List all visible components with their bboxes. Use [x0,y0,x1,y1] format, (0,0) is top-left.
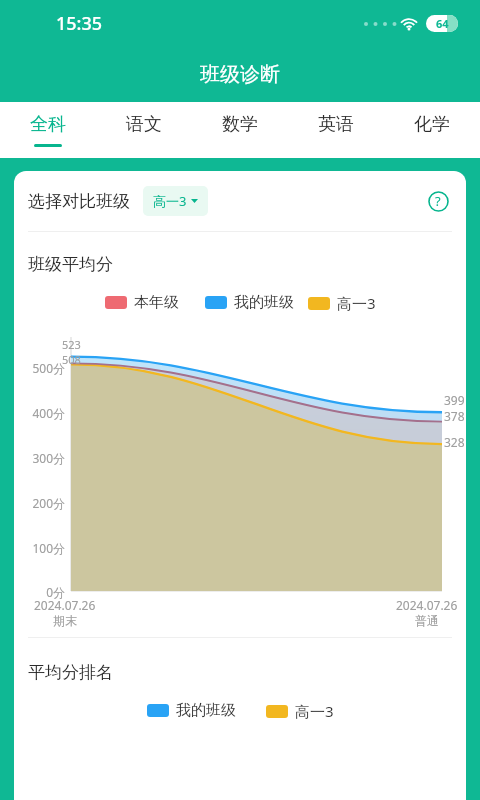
staticText: 100分 [14,540,65,556]
button[interactable]: 高一3 [308,293,376,313]
staticText: 378 [444,408,465,424]
staticText: 普通 [415,613,439,628]
staticText: 500分 [14,360,65,376]
staticText: 400分 [14,405,65,421]
staticText: 523 [62,337,81,352]
button[interactable]: 语文 [96,102,192,158]
staticText: 200分 [14,495,65,511]
button[interactable]: 高一3 [143,186,208,216]
staticText: 平均分排名 [28,662,113,683]
staticText: 300分 [14,450,65,466]
button[interactable]: 数学 [192,102,288,158]
staticText: 64 [436,16,449,31]
button[interactable]: 本年级 [105,293,179,312]
staticText: 高一3 [337,293,376,313]
staticText: 英语 [318,113,354,136]
staticText: 本年级 [134,293,179,312]
staticText: 0分 [14,584,65,600]
staticText: 选择对比班级 [28,191,130,212]
button[interactable]: 我的班级 [147,701,236,720]
staticText: 328 [444,434,465,450]
staticText: 2024.07.26 [396,597,458,613]
button[interactable]: 化学 [384,102,480,158]
staticText: 15:35 [56,11,103,36]
staticText: ? [435,192,441,210]
button[interactable]: 英语 [288,102,384,158]
button[interactable]: 高一3 [266,701,334,721]
button[interactable]: Help [424,187,452,215]
staticText: 语文 [126,113,162,136]
staticText: 数学 [222,113,258,136]
staticText: 班级平均分 [28,254,113,275]
button[interactable]: 我的班级 [205,293,294,312]
staticText: 我的班级 [176,701,236,720]
staticText: 化学 [414,113,450,136]
staticText: 全科 [30,113,66,136]
staticText: 高一3 [295,701,334,721]
button[interactable]: 全科 [0,102,96,158]
staticText: 我的班级 [234,293,294,312]
staticText: 508 [62,352,81,367]
staticText: 399 [444,392,465,408]
staticText: 2024.07.26 [34,597,96,613]
staticText: 期末 [53,613,77,628]
staticText: 班级诊断 [200,62,280,87]
staticText: 高一3 [153,192,187,210]
